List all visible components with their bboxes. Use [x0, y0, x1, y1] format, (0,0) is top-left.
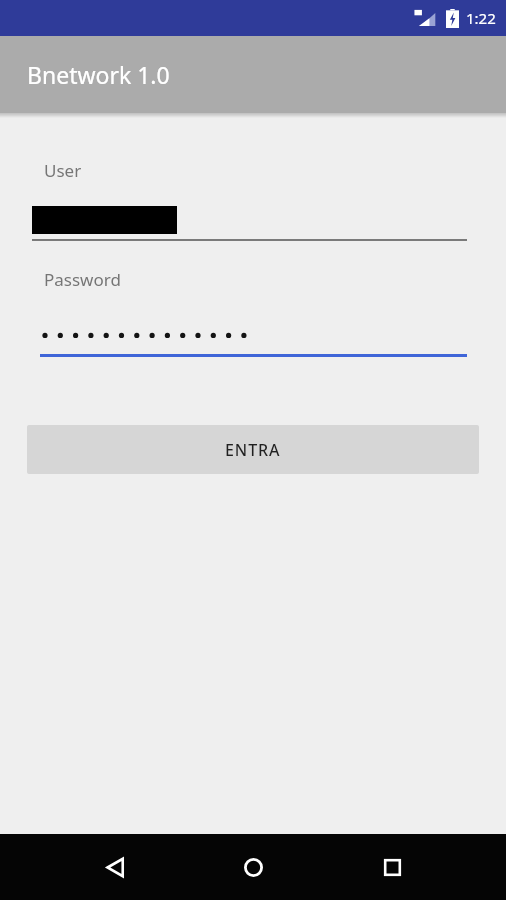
staticText: Bnetwork 1.0 [27, 59, 170, 90]
staticText: User [44, 159, 82, 182]
button[interactable]: Back [92, 844, 138, 890]
button[interactable] [0, 325, 506, 357]
staticText: ENTRA [225, 439, 281, 461]
staticText: Password [44, 268, 121, 291]
button[interactable]: Home [230, 844, 276, 890]
button[interactable]: Recent apps [369, 844, 415, 890]
staticText: 1:22 [466, 8, 496, 28]
button[interactable]: ENTRA [27, 425, 479, 474]
button[interactable] [0, 206, 506, 241]
